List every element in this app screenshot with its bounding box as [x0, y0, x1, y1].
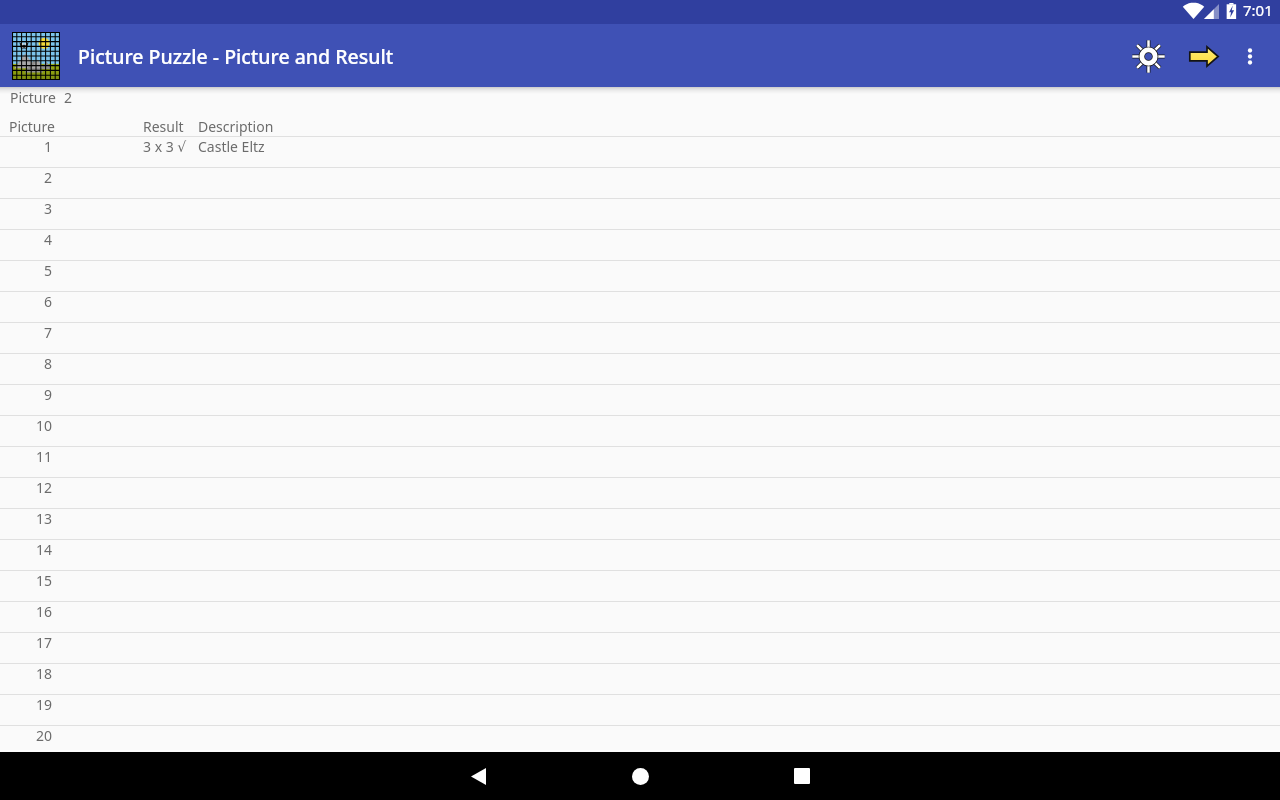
staticText: 15: [36, 571, 53, 590]
staticText: 7: [44, 323, 53, 342]
button[interactable]: 15: [0, 571, 1280, 601]
staticText: Castle Eltz: [198, 137, 265, 156]
staticText: 4: [44, 230, 53, 249]
staticText: 19: [36, 695, 53, 714]
staticText: 14: [36, 540, 53, 559]
button[interactable]: 20: [0, 726, 1280, 752]
button[interactable]: 5: [0, 261, 1280, 291]
staticText: 5: [44, 261, 53, 280]
button[interactable]: 17: [0, 633, 1280, 663]
staticText: 2: [64, 88, 73, 107]
button[interactable]: 18: [0, 664, 1280, 694]
staticText: 11: [36, 447, 53, 466]
button[interactable]: Next picture: [1180, 32, 1228, 80]
button[interactable]: More options: [1226, 32, 1274, 80]
button[interactable]: 13: [0, 509, 1280, 539]
staticText: Picture: [9, 117, 55, 136]
button[interactable]: 2: [0, 168, 1280, 198]
staticText: Picture: [10, 88, 56, 107]
staticText: 9: [44, 385, 53, 404]
staticText: 3 x 3 √: [143, 137, 187, 156]
button[interactable]: 3: [0, 199, 1280, 229]
button[interactable]: 16: [0, 602, 1280, 632]
button[interactable]: 9: [0, 385, 1280, 415]
staticText: Description: [198, 117, 274, 136]
staticText: Result: [143, 117, 184, 136]
button[interactable]: 19: [0, 695, 1280, 725]
button[interactable]: 6: [0, 292, 1280, 322]
staticText: 17: [36, 633, 53, 652]
button[interactable]: Brightness: [1124, 32, 1172, 80]
staticText: 6: [44, 292, 53, 311]
staticText: Picture Puzzle - Picture and Result: [78, 43, 394, 70]
button[interactable]: 4: [0, 230, 1280, 260]
button[interactable]: Home: [592, 752, 688, 800]
staticText: 13: [36, 509, 53, 528]
staticText: 10: [36, 416, 53, 435]
staticText: 16: [36, 602, 53, 621]
staticText: 18: [36, 664, 53, 683]
staticText: 2: [44, 168, 53, 187]
staticText: 12: [36, 478, 53, 497]
staticText: 3: [44, 199, 53, 218]
button[interactable]: 8: [0, 354, 1280, 384]
staticText: 20: [36, 726, 53, 745]
staticText: 1: [44, 137, 53, 156]
button[interactable]: 14: [0, 540, 1280, 570]
button[interactable]: Back: [430, 752, 526, 800]
button[interactable]: Recent apps: [754, 752, 850, 800]
staticText: 8: [44, 354, 53, 373]
button[interactable]: 10: [0, 416, 1280, 446]
button[interactable]: 1: [0, 137, 1280, 167]
staticText: 7:01: [1243, 0, 1273, 20]
button[interactable]: 12: [0, 478, 1280, 508]
button[interactable]: 11: [0, 447, 1280, 477]
